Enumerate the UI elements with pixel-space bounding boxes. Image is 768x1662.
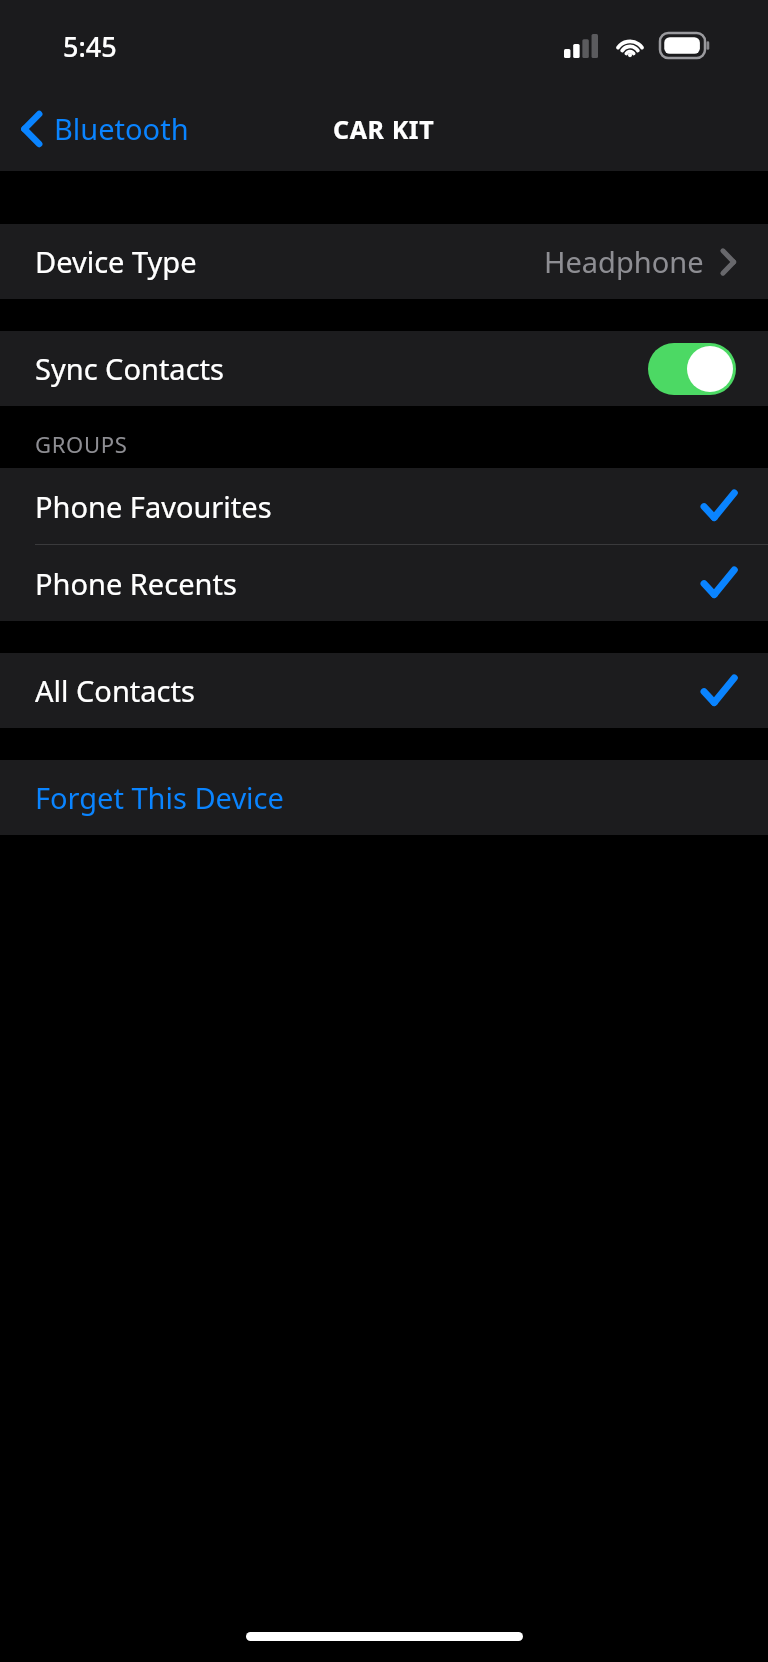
staticText: Phone Favourites — [35, 487, 272, 526]
staticText: All Contacts — [35, 671, 195, 710]
button[interactable]: Device Type — [0, 224, 768, 299]
button[interactable]: All Contacts — [0, 653, 768, 728]
other: Selected — [702, 490, 736, 522]
button[interactable]: Forget This Device — [0, 760, 768, 835]
staticText: Bluetooth — [54, 109, 189, 148]
staticText: Forget This Device — [35, 778, 284, 817]
button[interactable]: Bluetooth — [0, 86, 203, 171]
staticText: CAR KIT — [333, 112, 435, 146]
staticText: GROUPS — [35, 429, 128, 459]
button[interactable]: Phone Favourites — [0, 468, 768, 544]
other: Selected — [702, 675, 736, 707]
button[interactable]: Sync Contacts — [0, 331, 768, 406]
staticText: 5:45 — [63, 28, 117, 65]
staticText: Headphone — [544, 242, 704, 281]
staticText: Sync Contacts — [35, 349, 224, 388]
other: Selected — [702, 567, 736, 599]
button[interactable]: Phone Recents — [0, 545, 768, 621]
button[interactable]: Sync Contacts toggle — [648, 343, 736, 395]
staticText: Phone Recents — [35, 564, 237, 603]
staticText: Device Type — [35, 242, 197, 281]
